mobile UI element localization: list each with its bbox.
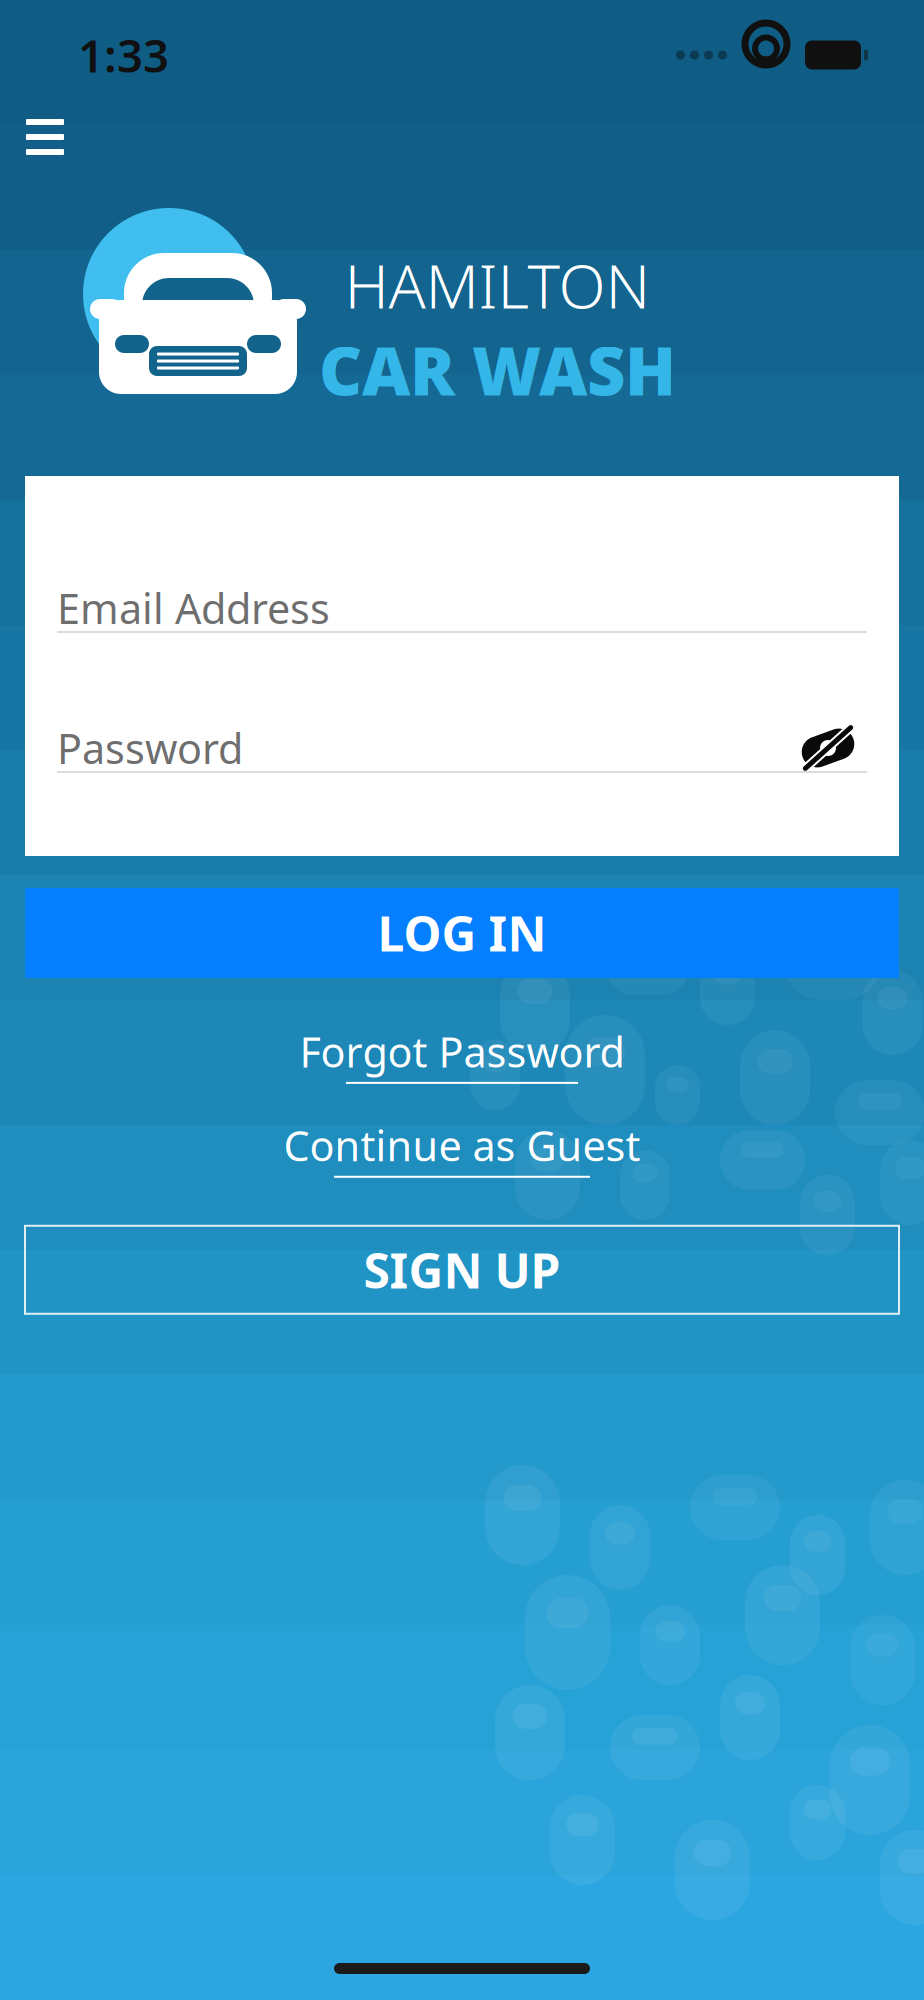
- staticText: Forgot Password: [299, 1024, 624, 1079]
- staticText: SIGN UP: [363, 1238, 560, 1302]
- button[interactable]: Continue as Guest: [259, 1108, 664, 1188]
- button[interactable]: Show password: [789, 721, 867, 775]
- button[interactable]: LOG IN: [25, 888, 899, 978]
- staticText: LOG IN: [377, 901, 546, 965]
- staticText: HAMILTON: [344, 244, 650, 325]
- button[interactable]: SIGN UP: [25, 1226, 899, 1314]
- staticText: 1:33: [78, 25, 169, 85]
- staticText: Continue as Guest: [283, 1118, 640, 1173]
- button[interactable]: Forgot Password: [275, 1014, 648, 1094]
- staticText: CAR WASH: [319, 325, 676, 414]
- staticText: Email Address: [57, 581, 330, 635]
- button[interactable]: Menu: [6, 103, 84, 171]
- staticText: Password: [57, 721, 243, 775]
